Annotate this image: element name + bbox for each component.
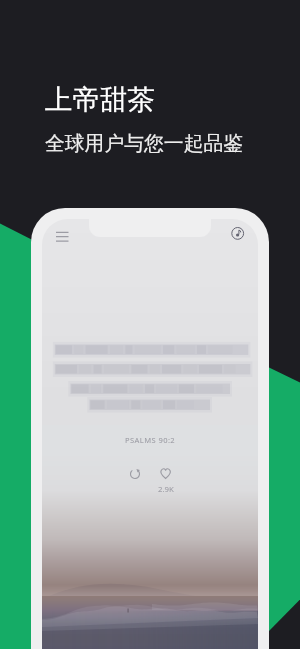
staticText: 2.9K (158, 484, 174, 495)
button[interactable]: Menu (48, 222, 76, 250)
button[interactable]: Music (225, 219, 251, 245)
button[interactable]: Refresh (124, 463, 146, 485)
staticText: 全球用户与您一起品鉴 (45, 131, 243, 156)
staticText: 上帝甜茶 (45, 83, 155, 118)
button[interactable]: Like (154, 463, 177, 486)
staticText: PSALMS 90:2 (125, 435, 176, 445)
